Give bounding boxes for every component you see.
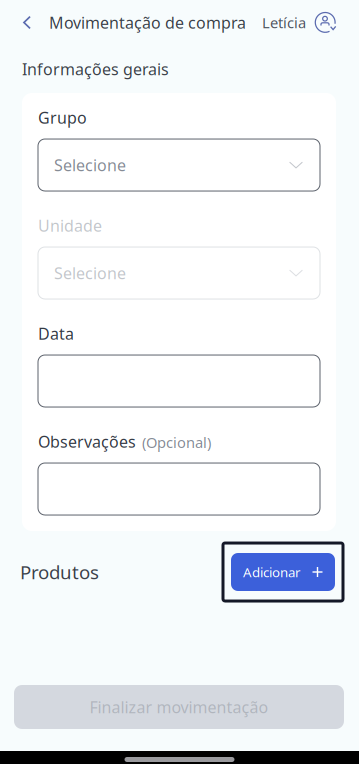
staticText: Produtos — [20, 560, 99, 584]
button[interactable]: Selecione — [38, 139, 320, 191]
staticText: Selecione — [54, 154, 126, 176]
staticText: Selecione — [54, 262, 126, 284]
button[interactable]: Data — [38, 355, 320, 407]
staticText: Grupo — [38, 107, 87, 128]
staticText: Unidade — [38, 215, 102, 236]
staticText: (Opcional) — [142, 433, 211, 452]
staticText: Letícia — [262, 13, 306, 32]
button[interactable]: Letícia — [262, 12, 336, 33]
button[interactable]: Observações — [38, 463, 320, 515]
staticText: Observações — [38, 431, 136, 452]
staticText: Data — [38, 323, 74, 344]
button[interactable]: Selecione — [38, 247, 320, 299]
button[interactable]: Finalizar movimentação — [14, 685, 344, 729]
staticText: Finalizar movimentação — [89, 696, 268, 718]
staticText: Informações gerais — [22, 58, 169, 80]
staticText: Adicionar — [243, 563, 301, 581]
staticText: Movimentação de compra — [49, 12, 246, 33]
button[interactable]: Adicionar — [223, 543, 343, 601]
button[interactable]: Voltar — [14, 4, 40, 40]
